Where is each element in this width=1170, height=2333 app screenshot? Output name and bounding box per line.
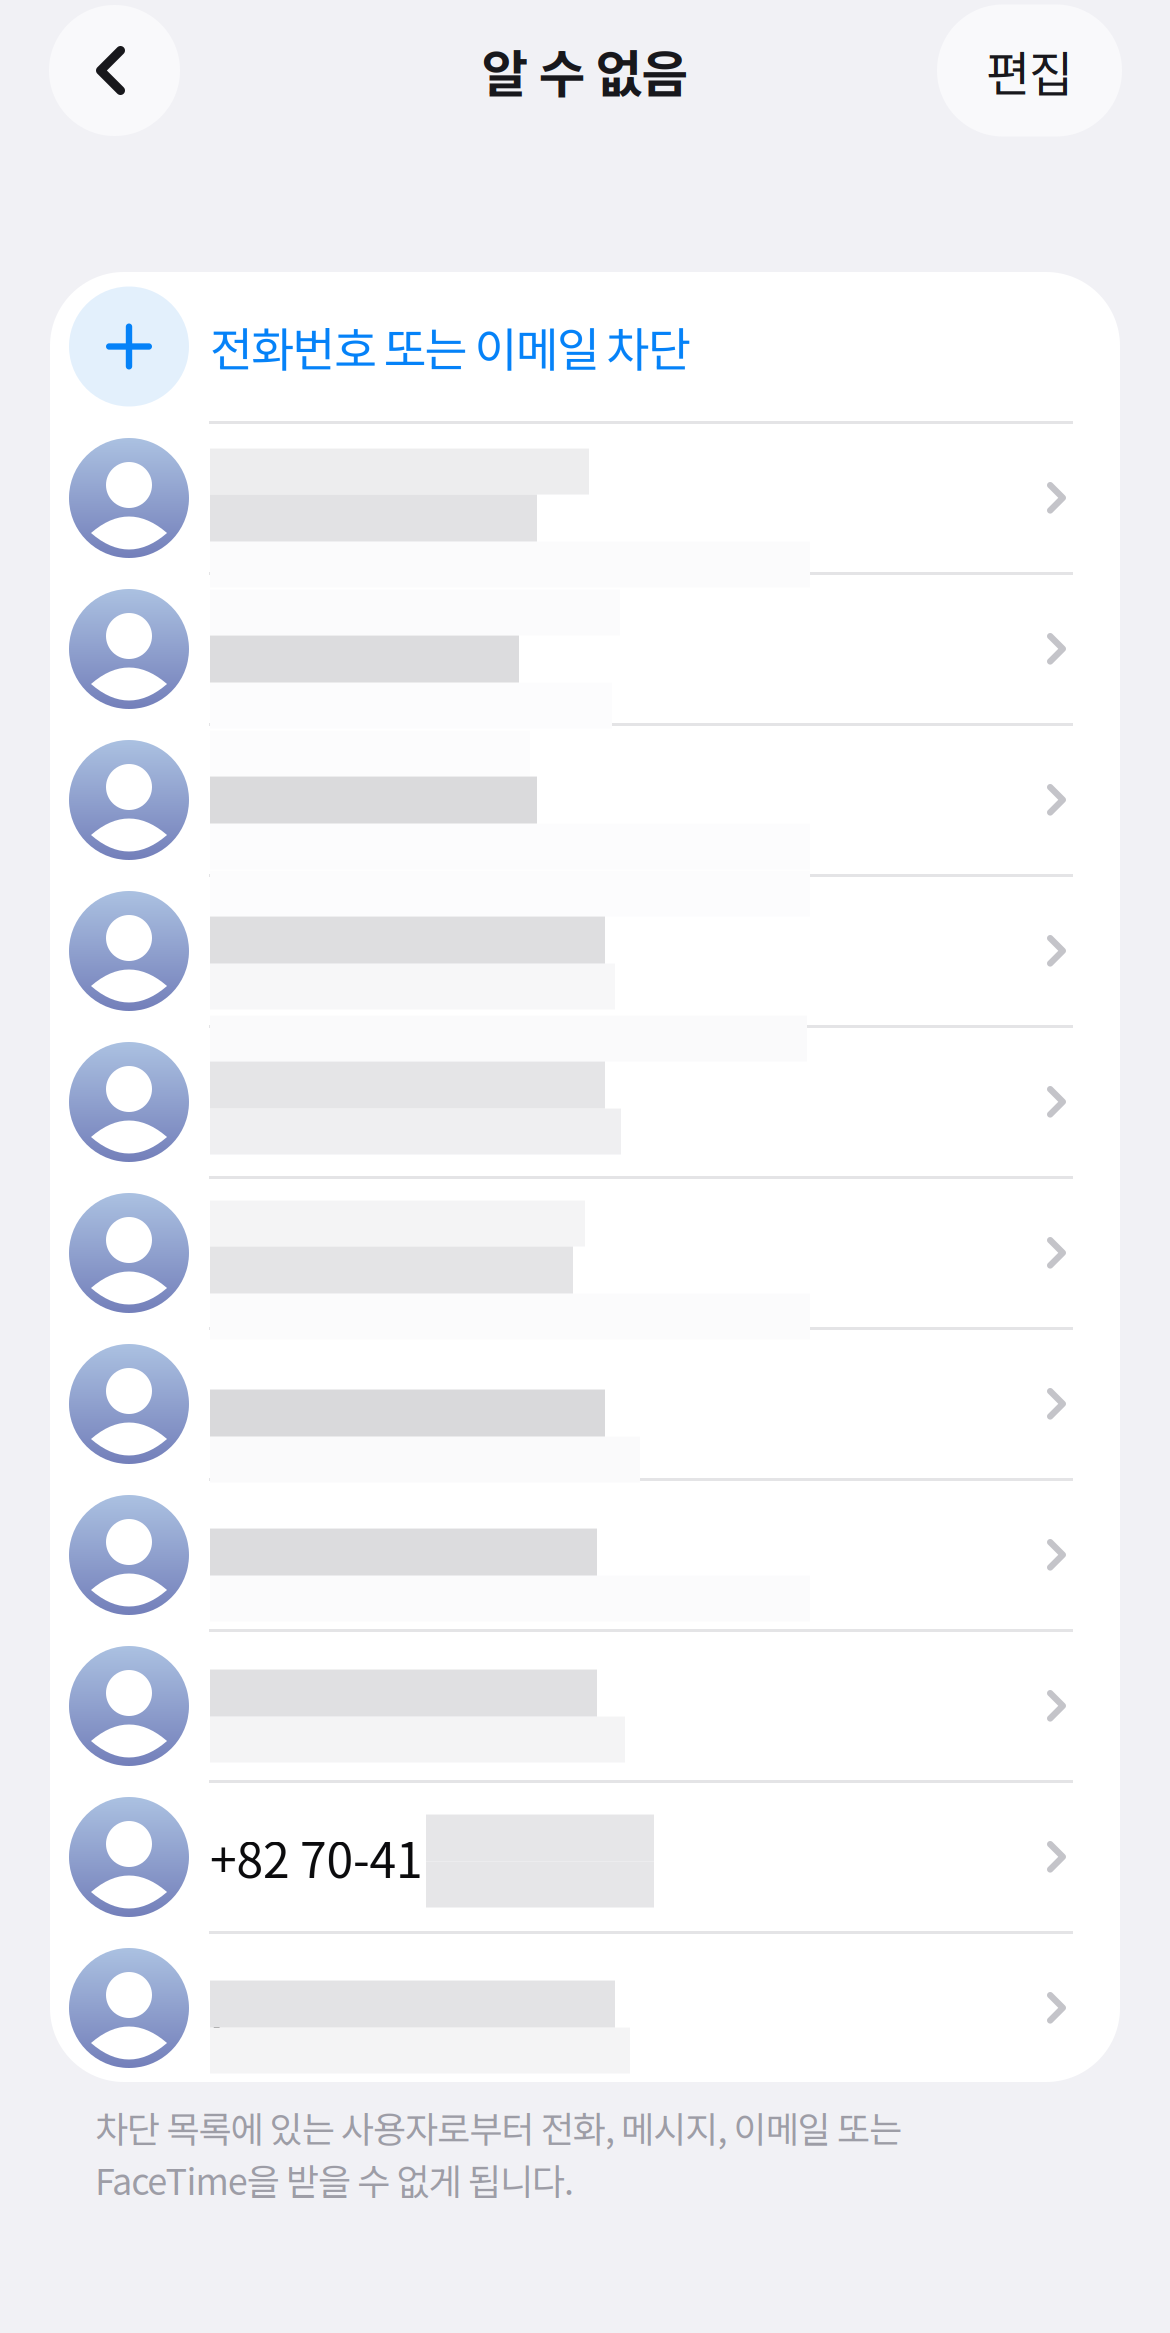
button[interactable]: [50, 1028, 1120, 1176]
button[interactable]: [50, 424, 1120, 572]
button[interactable]: [50, 1330, 1120, 1478]
button[interactable]: Back: [49, 5, 180, 136]
button[interactable]: [50, 575, 1120, 723]
staticText: 전화번호 또는 이메일 차단: [210, 313, 691, 380]
button[interactable]: .: [50, 1934, 1120, 2082]
staticText: +82 70-41: [210, 1822, 423, 1892]
staticText: 차단 목록에 있는 사용자로부터 전화, 메시지, 이메일 또는 FaceTim…: [95, 2101, 902, 2205]
button[interactable]: [50, 1632, 1120, 1780]
button[interactable]: [50, 1481, 1120, 1629]
button[interactable]: +82 70-41: [50, 1783, 1120, 1931]
button[interactable]: 전화번호 또는 이메일 차단: [50, 272, 1120, 421]
button[interactable]: [50, 1179, 1120, 1327]
button[interactable]: [50, 726, 1120, 874]
button[interactable]: 편집: [937, 4, 1122, 136]
staticText: .: [210, 1973, 223, 2043]
staticText: 편집: [986, 36, 1073, 105]
staticText: 알 수 없음: [481, 34, 688, 107]
button[interactable]: [50, 877, 1120, 1025]
